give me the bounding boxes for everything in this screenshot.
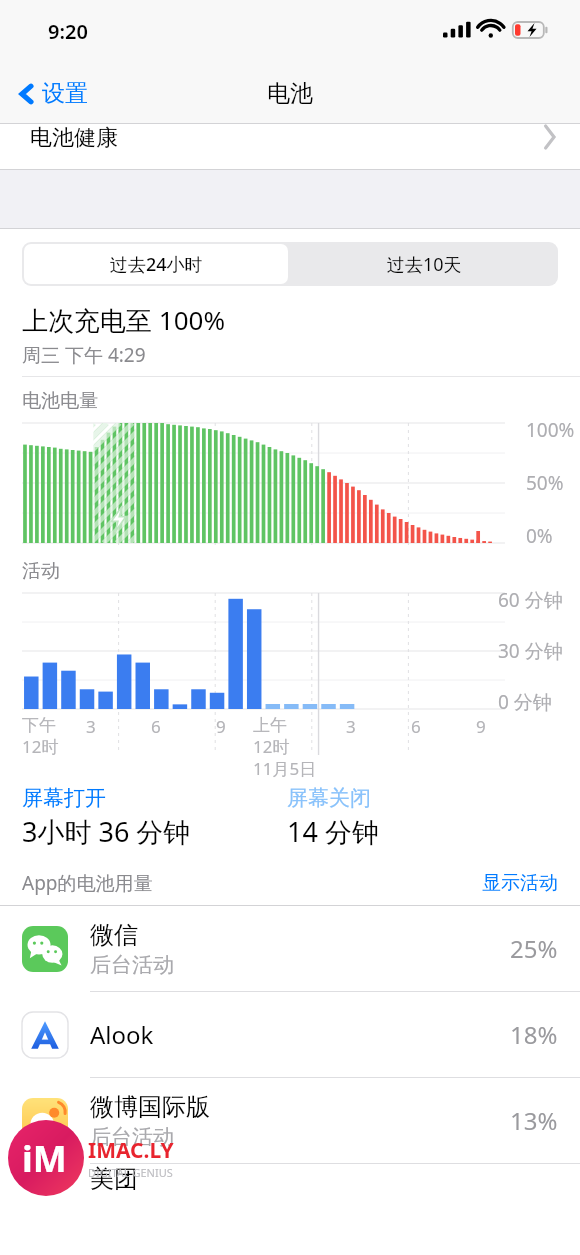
- button[interactable]: 微信: [0, 906, 580, 991]
- staticText: 后台活动: [90, 1124, 174, 1150]
- staticText: 14 分钟: [287, 813, 379, 850]
- staticText: 电池健康: [30, 124, 118, 152]
- button[interactable]: 微博国际版: [0, 1078, 580, 1163]
- staticText: 60 分钟: [498, 587, 563, 613]
- staticText: 微信: [90, 920, 138, 950]
- button[interactable]: 设置: [14, 75, 92, 112]
- button[interactable]: 过去10天: [290, 242, 558, 286]
- staticText: 25%: [510, 932, 558, 965]
- staticText: 后台活动: [90, 952, 174, 978]
- staticText: 3: [86, 715, 96, 738]
- staticText: 9:20: [48, 18, 88, 45]
- staticText: 3小时 36 分钟: [22, 813, 191, 850]
- staticText: DIGITAL GENIUS: [88, 1165, 173, 1180]
- staticText: 9: [476, 715, 486, 738]
- staticText: 0 分钟: [498, 689, 552, 715]
- staticText: 上次充电至 100%: [22, 302, 225, 338]
- button[interactable]: 电池健康: [0, 124, 580, 170]
- staticText: 电池电量: [22, 389, 98, 413]
- staticText: 设置: [42, 79, 88, 108]
- staticText: 周三 下午 4:29: [22, 342, 146, 368]
- button[interactable]: 过去24小时: [24, 244, 288, 284]
- staticText: 9: [216, 715, 226, 738]
- staticText: 过去24小时: [110, 252, 203, 277]
- staticText: 0%: [526, 523, 553, 549]
- staticText: 电池: [267, 79, 313, 108]
- staticText: 50%: [526, 470, 564, 496]
- staticText: 上午 12时 11月5日: [253, 715, 317, 779]
- button[interactable]: 美团: [0, 1164, 580, 1204]
- staticText: 6: [411, 715, 421, 738]
- staticText: 活动: [22, 559, 60, 583]
- staticText: 13%: [510, 1104, 558, 1137]
- staticText: iM: [22, 1134, 67, 1183]
- staticText: Alook: [90, 1018, 154, 1051]
- staticText: 显示活动: [482, 871, 558, 895]
- staticText: 美团: [90, 1164, 138, 1194]
- staticText: 下午 12时: [22, 715, 59, 759]
- staticText: 3: [346, 715, 356, 738]
- staticText: 100%: [526, 417, 575, 443]
- staticText: 过去10天: [387, 252, 462, 277]
- staticText: 屏幕关闭: [287, 785, 371, 811]
- staticText: 微博国际版: [90, 1092, 210, 1122]
- staticText: 屏幕打开: [22, 785, 106, 811]
- staticText: IMAC.LY: [88, 1136, 174, 1165]
- staticText: App的电池用量: [22, 870, 153, 896]
- button[interactable]: Alook: [0, 992, 580, 1077]
- staticText: 18%: [510, 1018, 558, 1051]
- staticText: 30 分钟: [498, 638, 563, 664]
- staticText: 6: [151, 715, 161, 738]
- button[interactable]: 显示活动: [482, 871, 558, 895]
